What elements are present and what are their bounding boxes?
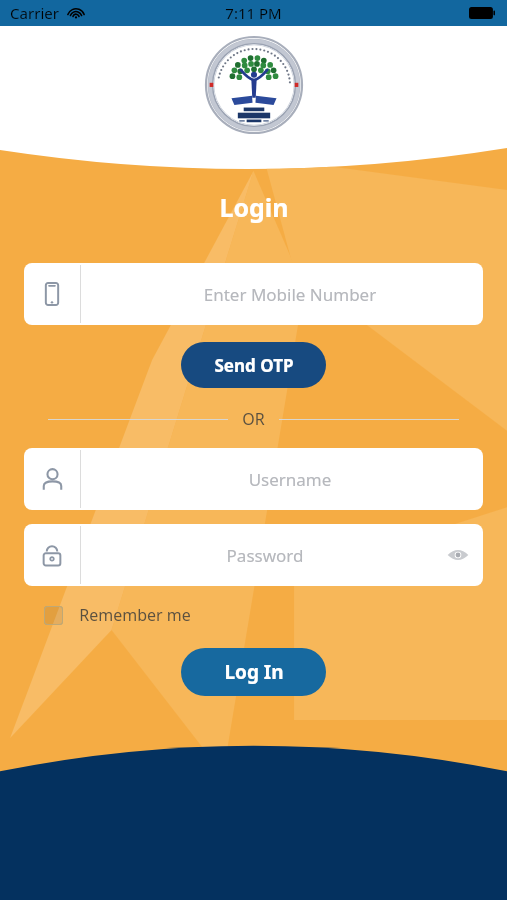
staticText: Enter Mobile Number (97, 283, 483, 306)
button[interactable]: Log In (181, 648, 326, 696)
staticText: Remember me (79, 604, 191, 626)
staticText: Log In (224, 659, 284, 685)
staticText: Carrier (10, 3, 59, 23)
staticText: 7:11 PM (225, 3, 282, 23)
button[interactable]: Username (24, 448, 483, 510)
button[interactable]: Remember me (44, 604, 507, 626)
other: Username (41, 468, 64, 491)
staticText: Username (97, 468, 483, 491)
other: Litera Heritage School logo (205, 36, 303, 134)
button[interactable]: Password (24, 524, 483, 586)
button[interactable]: Mobile (24, 263, 483, 325)
staticText: Password (97, 544, 433, 567)
staticText: Send OTP (214, 354, 294, 377)
other: Password (41, 544, 63, 566)
other: Mobile (41, 283, 63, 305)
button[interactable]: Show password (433, 524, 483, 586)
staticText: Login (219, 190, 289, 224)
button[interactable]: Send OTP (181, 342, 326, 388)
staticText: OR (242, 408, 265, 430)
